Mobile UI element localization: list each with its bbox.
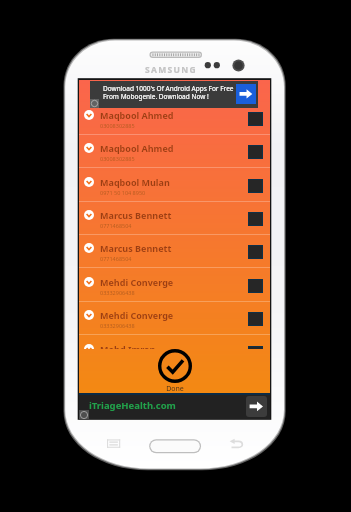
staticText: Marcus Bennett: [100, 209, 172, 221]
staticText: Maqbool Mulan: [100, 176, 170, 188]
staticText: 0971 50 104 8950: [100, 189, 146, 196]
staticText: 0771468504: [100, 222, 132, 229]
button[interactable]: Mehdi Converge: [79, 269, 270, 302]
staticText: Mohd Imran: [100, 343, 156, 349]
staticText: 0771468504: [100, 255, 132, 262]
staticText: 03008302885: [100, 155, 135, 162]
staticText: 03332906438: [100, 289, 135, 296]
staticText: iTriageHealth.com: [89, 399, 176, 412]
staticText: Mehdi Converge: [100, 309, 174, 321]
button[interactable]: Download 1000's Of Android Apps For Free: [90, 81, 258, 108]
button[interactable]: Done: [158, 349, 192, 383]
button[interactable]: Maqbool Mulan: [79, 169, 270, 202]
staticText: SAMSUNG: [145, 64, 197, 76]
button[interactable]: Open advertisement: [236, 84, 256, 104]
button[interactable]: Open iTriageHealth.com: [246, 396, 267, 417]
button[interactable]: Ad information: [90, 99, 99, 108]
button[interactable]: Maqbool Ahmed: [79, 135, 270, 168]
staticText: Download 1000's Of Android Apps For Free: [103, 84, 234, 93]
button[interactable]: Maqbool Ahmed: [79, 102, 270, 135]
staticText: 03332906438: [100, 322, 135, 329]
staticText: Maqbool Ahmed: [100, 142, 174, 154]
button[interactable]: iTriageHealth.com: [79, 393, 270, 419]
button[interactable]: Marcus Bennett: [79, 235, 270, 268]
button[interactable]: Marcus Bennett: [79, 202, 270, 235]
staticText: Mehdi Converge: [100, 276, 174, 288]
staticText: From Mobogenie. Download Now !: [103, 92, 209, 101]
staticText: Maqbool Ahmed: [100, 109, 174, 121]
staticText: Marcus Bennett: [100, 242, 172, 254]
button[interactable]: Mehdi Converge: [79, 302, 270, 335]
staticText: 03008302885: [100, 122, 135, 129]
button[interactable]: Mohd Imran: [79, 336, 270, 349]
button[interactable]: Ad information: [79, 410, 89, 419]
staticText: Done: [163, 384, 187, 394]
